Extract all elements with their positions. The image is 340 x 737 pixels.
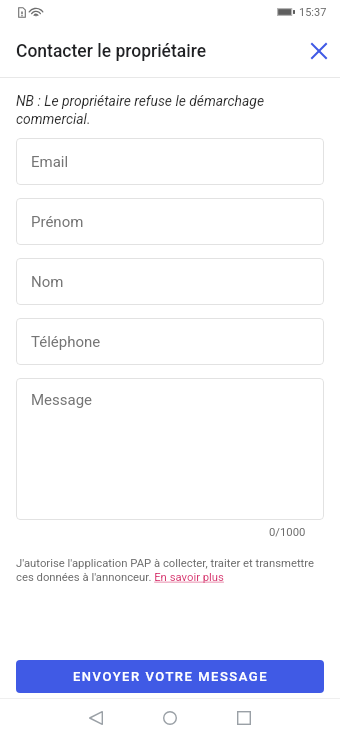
button[interactable]: Accueil [148, 699, 192, 737]
staticText: Contacter le propriétaire [16, 41, 207, 62]
staticText: Téléphone [31, 333, 101, 351]
button[interactable]: Téléphone [16, 318, 324, 365]
staticText: Email [31, 153, 69, 171]
staticText: 0/1000 [269, 526, 306, 539]
button[interactable]: Retour [74, 699, 118, 737]
button[interactable]: Applications récentes [222, 699, 266, 737]
staticText: Message [31, 391, 93, 409]
staticText: ENVOYER VOTRE MESSAGE [73, 669, 268, 684]
staticText: Prénom [31, 213, 84, 231]
staticText: NB : Le propriétaire refuse le démarchag… [16, 93, 324, 127]
button[interactable]: Email [16, 138, 324, 185]
staticText: 15:37 [299, 6, 327, 19]
button[interactable]: ENVOYER VOTRE MESSAGE [16, 660, 324, 693]
staticText: Nom [31, 273, 64, 291]
button[interactable]: Fermer [302, 34, 336, 68]
button[interactable]: Message [16, 378, 324, 520]
staticText: J'autorise l'application PAP à collecter… [16, 557, 324, 584]
button[interactable]: Prénom [16, 198, 324, 245]
button[interactable]: Nom [16, 258, 324, 305]
